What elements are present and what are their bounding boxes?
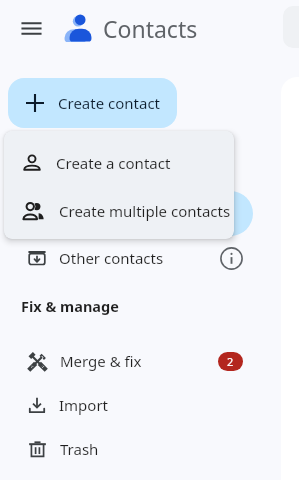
staticText: Trash (60, 439, 99, 459)
button[interactable]: Create contact (8, 78, 177, 128)
button[interactable]: Main menu (10, 7, 52, 49)
staticText: 2 (227, 354, 234, 369)
staticText: Other contacts (59, 248, 164, 268)
staticText: Fix & manage (21, 296, 119, 316)
button[interactable]: Create multiple contacts (4, 189, 234, 233)
staticText: Merge & fix (60, 351, 142, 371)
staticText: Import (59, 395, 109, 415)
staticText: Create contact (58, 93, 161, 113)
button[interactable]: Trash (0, 427, 299, 471)
button[interactable]: Import (0, 383, 299, 427)
staticText: Contacts (103, 13, 198, 44)
staticText: Create a contact (56, 153, 171, 173)
staticText: Create multiple contacts (59, 201, 231, 221)
button[interactable]: Merge & fix (0, 339, 299, 383)
button[interactable]: Other contacts (0, 236, 299, 280)
button[interactable]: Create a contact (4, 141, 234, 185)
